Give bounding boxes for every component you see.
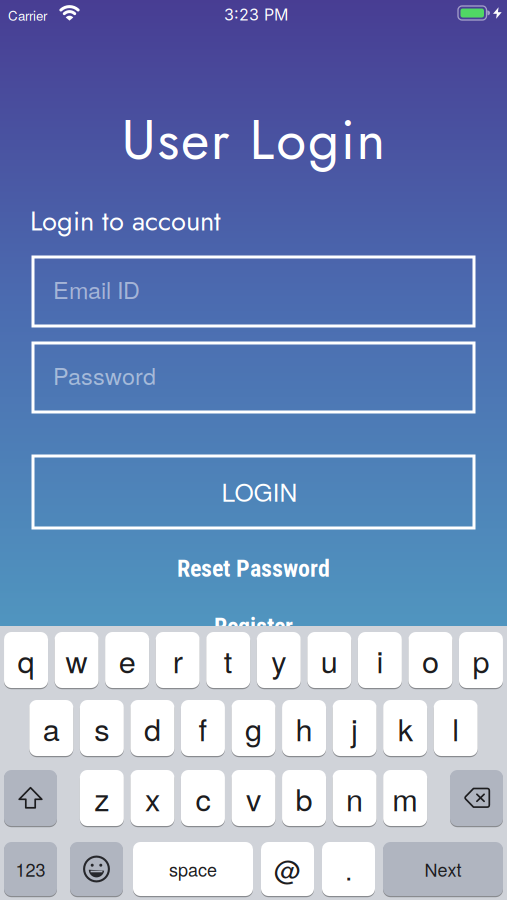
staticText: Login to account bbox=[30, 201, 221, 241]
button[interactable]: y bbox=[257, 632, 301, 688]
button[interactable]: k bbox=[383, 700, 427, 756]
staticText: k bbox=[398, 706, 413, 750]
staticText: c bbox=[195, 776, 210, 820]
staticText: e bbox=[119, 638, 136, 682]
button[interactable]: Shift bbox=[4, 770, 57, 826]
staticText: q bbox=[17, 638, 34, 682]
staticText: . bbox=[345, 850, 352, 888]
staticText: f bbox=[198, 706, 207, 750]
button[interactable]: g bbox=[231, 700, 275, 756]
button[interactable]: q bbox=[4, 632, 48, 688]
staticText: a bbox=[43, 706, 60, 750]
button[interactable]: j bbox=[333, 700, 377, 756]
staticText: 3:23 PM bbox=[224, 5, 288, 24]
staticText: LOGIN bbox=[221, 473, 297, 509]
staticText: @ bbox=[274, 850, 301, 888]
staticText: g bbox=[245, 706, 262, 750]
staticText: y bbox=[271, 638, 286, 682]
button[interactable]: c bbox=[181, 770, 225, 826]
staticText: h bbox=[296, 706, 313, 750]
button[interactable]: b bbox=[282, 770, 326, 826]
staticText: r bbox=[173, 638, 183, 682]
button[interactable]: Email ID bbox=[33, 257, 474, 326]
button[interactable]: h bbox=[282, 700, 326, 756]
button[interactable]: a bbox=[29, 700, 73, 756]
staticText: User Login bbox=[121, 100, 386, 179]
button[interactable]: Emoji bbox=[70, 842, 123, 896]
staticText: Next bbox=[424, 856, 461, 882]
staticText: Register bbox=[214, 612, 293, 641]
staticText: n bbox=[346, 776, 363, 820]
staticText: d bbox=[144, 706, 161, 750]
button[interactable]: Delete bbox=[450, 770, 503, 826]
button[interactable]: x bbox=[130, 770, 174, 826]
button[interactable]: . bbox=[322, 842, 375, 896]
staticText: 123 bbox=[15, 856, 45, 882]
button[interactable]: e bbox=[105, 632, 149, 688]
button[interactable]: 123 bbox=[4, 842, 57, 896]
button[interactable]: Register bbox=[214, 612, 293, 641]
staticText: i bbox=[376, 638, 383, 682]
staticText: l bbox=[452, 706, 459, 750]
button[interactable]: i bbox=[358, 632, 402, 688]
staticText: space bbox=[169, 856, 217, 882]
button[interactable]: f bbox=[181, 700, 225, 756]
staticText: u bbox=[321, 638, 338, 682]
staticText: j bbox=[351, 706, 358, 750]
staticText: p bbox=[472, 638, 489, 682]
staticText: m bbox=[392, 776, 418, 820]
button[interactable]: m bbox=[383, 770, 427, 826]
button[interactable]: o bbox=[408, 632, 452, 688]
button[interactable]: t bbox=[206, 632, 250, 688]
button[interactable]: s bbox=[80, 700, 124, 756]
staticText: Carrier bbox=[8, 5, 47, 25]
button[interactable]: p bbox=[459, 632, 503, 688]
button[interactable]: LOGIN bbox=[33, 456, 474, 528]
button[interactable]: z bbox=[80, 770, 124, 826]
staticText: Password bbox=[53, 358, 156, 392]
button[interactable]: Reset Password bbox=[177, 554, 330, 583]
staticText: x bbox=[145, 776, 160, 820]
button[interactable]: v bbox=[231, 770, 275, 826]
staticText: w bbox=[66, 638, 88, 682]
button[interactable]: d bbox=[130, 700, 174, 756]
button[interactable]: u bbox=[307, 632, 351, 688]
staticText: v bbox=[246, 776, 261, 820]
staticText: s bbox=[94, 706, 109, 750]
button[interactable]: Password bbox=[33, 343, 474, 412]
button[interactable]: n bbox=[333, 770, 377, 826]
button[interactable]: l bbox=[434, 700, 478, 756]
staticText: b bbox=[295, 776, 312, 820]
button[interactable]: r bbox=[156, 632, 200, 688]
staticText: o bbox=[422, 638, 439, 682]
button[interactable]: @ bbox=[261, 842, 314, 896]
staticText: z bbox=[94, 776, 109, 820]
button[interactable]: w bbox=[55, 632, 99, 688]
button[interactable]: space bbox=[133, 842, 253, 896]
button[interactable]: Next bbox=[383, 842, 503, 896]
staticText: Email ID bbox=[53, 272, 140, 306]
staticText: Reset Password bbox=[177, 554, 330, 583]
staticText: t bbox=[224, 638, 233, 682]
